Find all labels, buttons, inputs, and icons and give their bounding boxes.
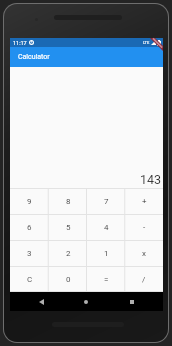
- button[interactable]: x: [125, 240, 163, 266]
- button[interactable]: Back: [31, 292, 51, 311]
- staticText: 2: [66, 249, 71, 258]
- staticText: 0: [66, 275, 71, 284]
- button[interactable]: 0: [49, 266, 87, 292]
- button[interactable]: 8: [49, 188, 87, 214]
- staticText: 9: [27, 197, 32, 206]
- staticText: 1: [104, 249, 109, 258]
- button[interactable]: 4: [87, 214, 125, 240]
- staticText: -: [143, 223, 146, 232]
- button[interactable]: 1: [87, 240, 125, 266]
- button[interactable]: 9: [10, 188, 49, 214]
- button[interactable]: Recent apps: [122, 292, 142, 311]
- staticText: 8: [66, 197, 71, 206]
- button[interactable]: Home: [76, 292, 96, 311]
- staticText: 3: [27, 249, 32, 258]
- button[interactable]: 3: [10, 240, 49, 266]
- button[interactable]: +: [125, 188, 163, 214]
- staticText: 143: [140, 172, 162, 187]
- button[interactable]: 5: [49, 214, 87, 240]
- button[interactable]: 2: [49, 240, 87, 266]
- staticText: =: [104, 275, 109, 284]
- button[interactable]: 7: [87, 188, 125, 214]
- staticText: +: [142, 197, 147, 206]
- button[interactable]: Calculator: [10, 47, 163, 67]
- staticText: LTE: [143, 40, 150, 45]
- staticText: x: [142, 249, 146, 258]
- staticText: 7: [104, 197, 109, 206]
- button[interactable]: C: [10, 266, 49, 292]
- staticText: Calculator: [18, 53, 50, 61]
- button[interactable]: -: [125, 214, 163, 240]
- staticText: 4: [104, 223, 109, 232]
- button[interactable]: 6: [10, 214, 49, 240]
- staticText: 5: [66, 223, 71, 232]
- button[interactable]: /: [125, 266, 163, 292]
- button[interactable]: =: [87, 266, 125, 292]
- staticText: 6: [27, 223, 32, 232]
- staticText: 11:17: [13, 40, 27, 46]
- staticText: /: [142, 275, 146, 284]
- staticText: C: [27, 275, 33, 284]
